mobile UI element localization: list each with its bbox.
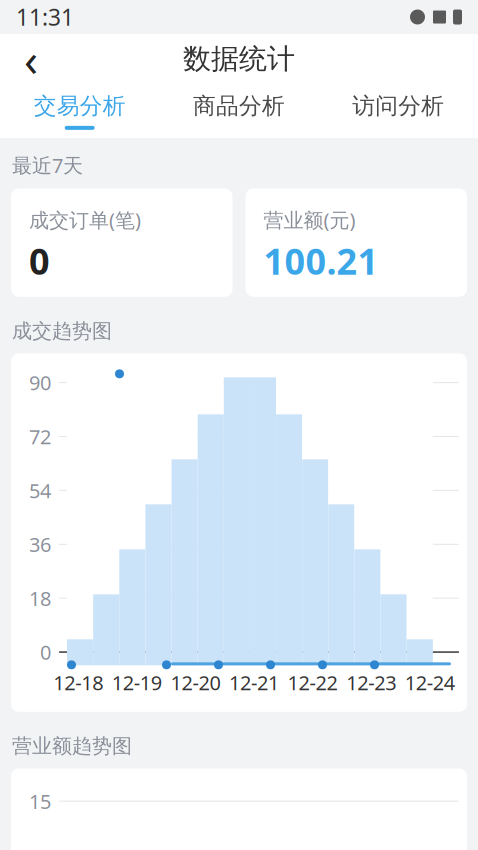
staticText: 12-19 xyxy=(112,669,162,696)
staticText: 0 xyxy=(29,237,50,285)
staticText: 最近7天 xyxy=(12,152,83,178)
staticText: 交易分析 xyxy=(34,92,126,120)
staticText: 成交订单(笔) xyxy=(29,206,141,233)
staticText: 12-21 xyxy=(229,669,279,696)
staticText: 12-22 xyxy=(288,669,338,696)
staticText: 商品分析 xyxy=(193,92,285,120)
staticText: 90 xyxy=(29,369,51,396)
staticText: 12-18 xyxy=(53,669,103,696)
staticText: 100.21 xyxy=(263,237,378,285)
button[interactable]: 商品分析 xyxy=(159,84,319,138)
staticText: 数据统计 xyxy=(183,42,295,76)
staticText: 72 xyxy=(29,423,51,450)
button[interactable]: 访问分析 xyxy=(319,84,478,138)
staticText: 11:31 xyxy=(16,2,74,32)
staticText: 18 xyxy=(29,585,51,611)
staticText: 12-23 xyxy=(346,669,396,696)
staticText: 成交趋势图 xyxy=(12,319,112,343)
staticText: 12-24 xyxy=(405,669,455,696)
staticText: 访问分析 xyxy=(352,92,444,120)
staticText: 54 xyxy=(29,477,51,504)
button[interactable]: Back xyxy=(8,36,54,82)
staticText: ‹ xyxy=(24,29,38,89)
staticText: 12-20 xyxy=(170,669,220,696)
staticText: 36 xyxy=(29,531,51,558)
staticText: 15 xyxy=(29,788,51,814)
staticText: 营业额趋势图 xyxy=(12,734,132,758)
staticText: 营业额(元) xyxy=(263,206,355,233)
staticText: 0 xyxy=(40,639,51,665)
button[interactable]: 交易分析 xyxy=(0,84,159,138)
